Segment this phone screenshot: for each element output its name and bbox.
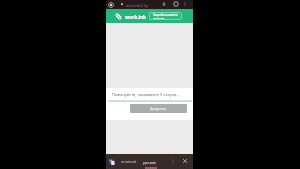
button[interactable]: Tabs — [174, 2, 178, 6]
other: Google Translate — [109, 159, 115, 165]
staticText: Зарабатывайте деньги — [153, 12, 179, 20]
staticText: work.ink/x/1pj — [126, 3, 149, 7]
staticText: work.ink — [125, 14, 147, 21]
button[interactable]: Voice search — [162, 2, 166, 6]
button[interactable]: английский — [121, 160, 137, 164]
staticText: русский — [143, 160, 156, 164]
button[interactable]: русский — [143, 160, 156, 164]
button[interactable]: Дождитесь — [130, 104, 187, 113]
staticText: Пожалуйста, подождите 5 секунд... — [112, 92, 180, 97]
staticText: Дождитесь — [150, 107, 167, 111]
button[interactable]: Close — [183, 159, 187, 163]
button[interactable]: Translate options — [171, 159, 175, 163]
button[interactable]: Reload — [108, 2, 114, 8]
button[interactable]: Зарабатывайте деньги — [149, 12, 182, 20]
other: Secure connection — [121, 3, 123, 5]
button[interactable]: More options — [183, 2, 187, 6]
